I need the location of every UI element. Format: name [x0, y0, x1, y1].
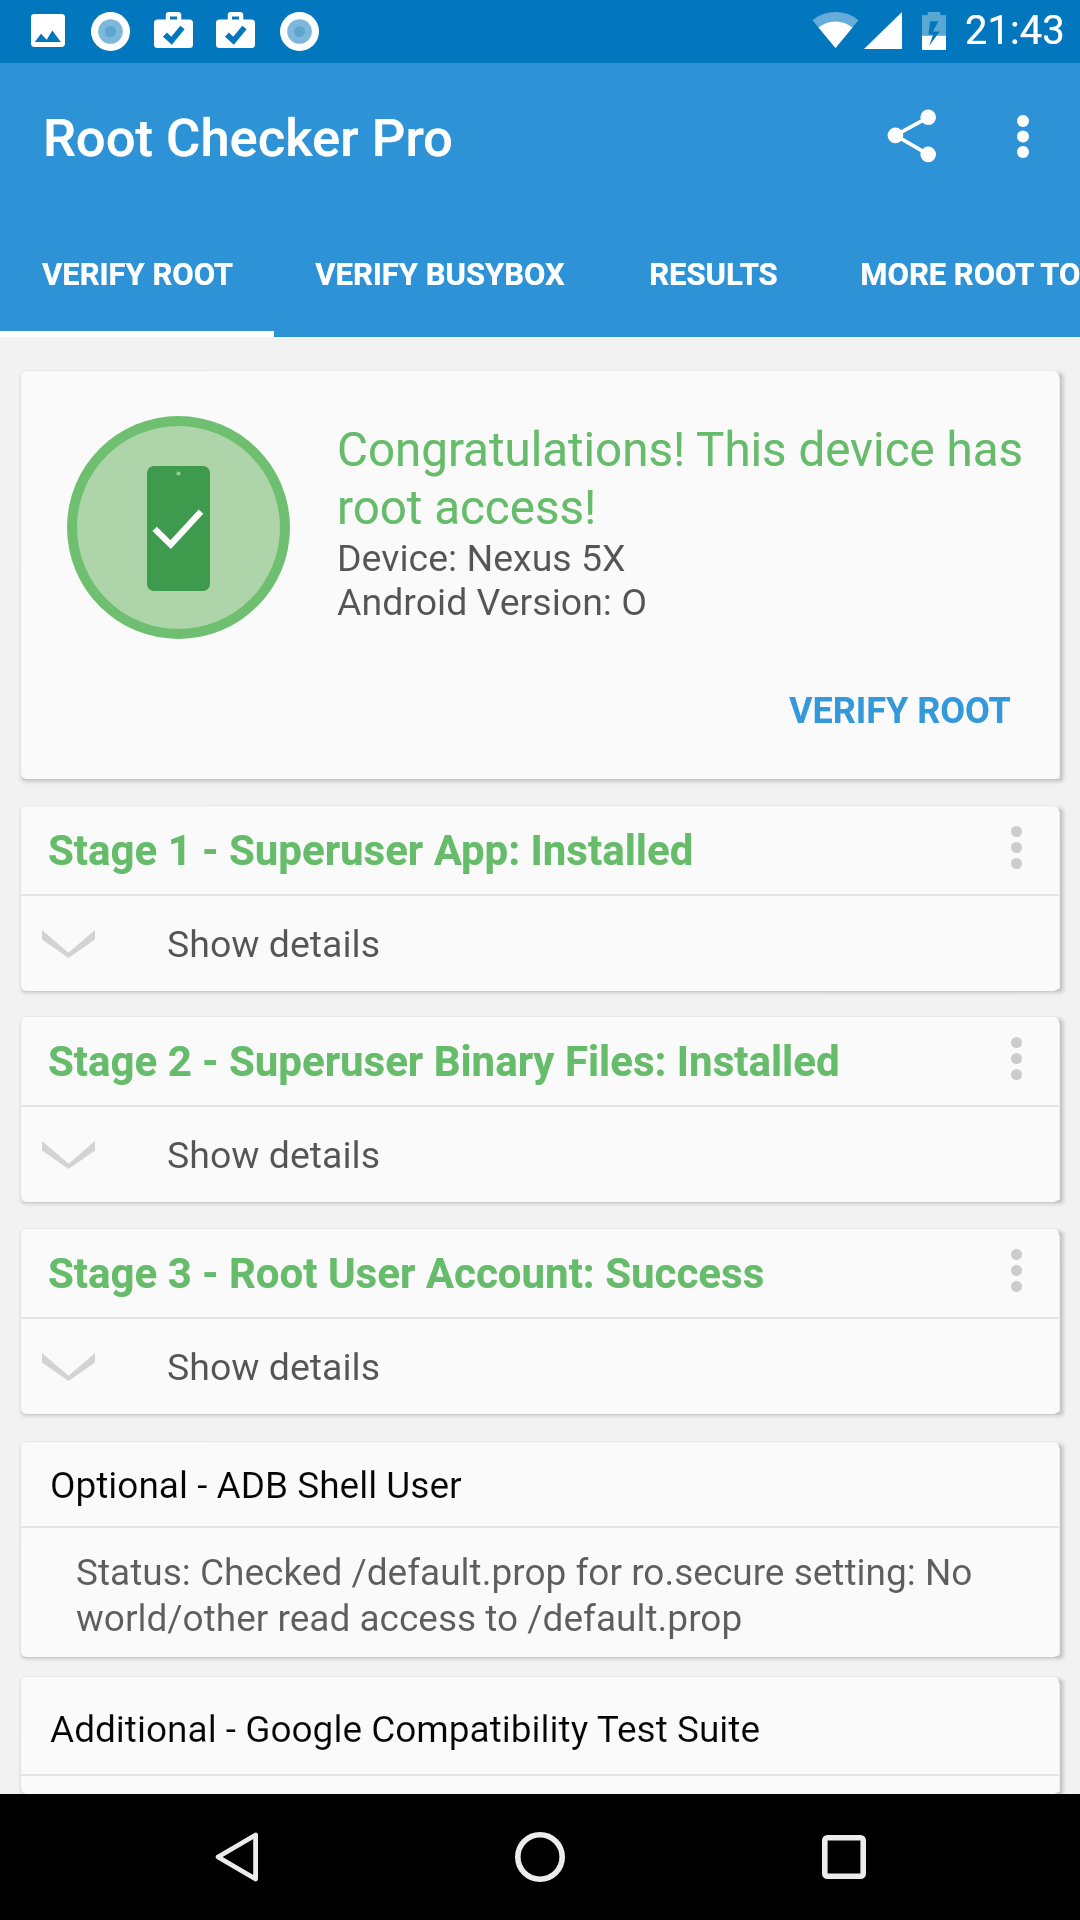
staticText: 21:43 [965, 7, 1065, 54]
button[interactable]: Stage options [972, 806, 1059, 891]
button[interactable]: Recents [781, 1794, 907, 1920]
button[interactable]: MORE ROOT TOOLS [834, 208, 1080, 337]
staticText: Status: Checked /default.prop for ro.sec… [76, 1551, 1006, 1640]
staticText: Congratulations! This device has root ac… [337, 422, 1047, 536]
staticText: Show details [167, 1133, 381, 1177]
button[interactable]: VERIFY BUSYBOX [274, 208, 606, 337]
button[interactable]: Share [864, 88, 960, 184]
staticText: Device: Nexus 5X [337, 536, 626, 580]
staticText: RESULTS [649, 256, 778, 292]
staticText: Stage 3 - Root User Account: Success [48, 1249, 765, 1298]
staticText: VERIFY BUSYBOX [315, 256, 565, 292]
button[interactable]: Back [173, 1794, 299, 1920]
button[interactable]: VERIFY ROOT [761, 669, 1038, 753]
staticText: Optional - ADB Shell User [50, 1464, 462, 1507]
button[interactable]: Show details [21, 896, 1059, 991]
button[interactable]: Stage options [972, 1017, 1059, 1102]
staticText: Android Version: O [337, 580, 648, 624]
button[interactable]: Show details [21, 1319, 1059, 1414]
button[interactable]: Additional - Google Compatibility Test S… [21, 1677, 1059, 1774]
button[interactable]: Stage options [972, 1229, 1059, 1314]
staticText: Root Checker Pro [43, 107, 453, 169]
button[interactable]: Show details [21, 1107, 1059, 1202]
staticText: Show details [167, 922, 381, 966]
staticText: VERIFY ROOT [789, 690, 1011, 732]
button[interactable]: Home [477, 1794, 603, 1920]
staticText: Stage 1 - Superuser App: Installed [48, 826, 694, 875]
button[interactable]: VERIFY ROOT [0, 208, 274, 337]
staticText: Stage 2 - Superuser Binary Files: Instal… [48, 1037, 840, 1086]
button[interactable]: Optional - ADB Shell User [21, 1442, 1059, 1526]
staticText: VERIFY ROOT [42, 256, 233, 292]
staticText: Show details [167, 1345, 381, 1389]
button[interactable]: More options [975, 88, 1071, 184]
button[interactable]: RESULTS [606, 208, 820, 337]
staticText: Additional - Google Compatibility Test S… [50, 1708, 761, 1751]
staticText: MORE ROOT TOOLS [860, 256, 1080, 292]
